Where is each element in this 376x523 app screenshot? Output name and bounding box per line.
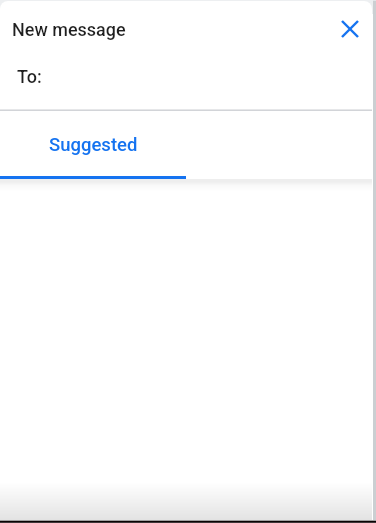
staticText: To: bbox=[17, 66, 42, 87]
button[interactable]: Close bbox=[330, 9, 370, 49]
staticText: Suggested bbox=[49, 134, 138, 156]
button[interactable]: To: bbox=[0, 55, 372, 109]
staticText: New message bbox=[12, 19, 126, 40]
button[interactable]: Suggested bbox=[0, 111, 186, 179]
